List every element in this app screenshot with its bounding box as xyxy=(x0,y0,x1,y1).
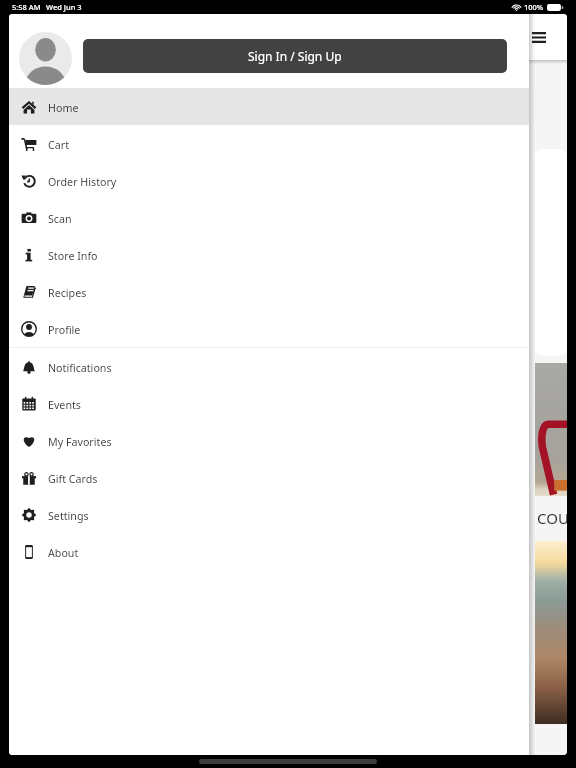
staticText: Notifications xyxy=(48,361,112,376)
button[interactable]: Settings xyxy=(9,496,529,533)
staticText: Events xyxy=(48,398,81,413)
staticText: Order History xyxy=(48,175,117,190)
staticText: Recipes xyxy=(48,286,87,301)
button[interactable]: Cart xyxy=(9,125,529,162)
button[interactable]: Events xyxy=(9,385,529,422)
staticText: Gift Cards xyxy=(48,472,98,487)
button[interactable]: Sign In / Sign Up xyxy=(83,39,507,73)
staticText: 100% xyxy=(524,2,544,12)
staticText: 5:58 AM xyxy=(12,2,41,12)
button[interactable]: Recipes xyxy=(9,273,529,310)
button[interactable]: Gift Cards xyxy=(9,459,529,496)
staticText: Cart xyxy=(48,138,70,153)
button[interactable]: Store Info xyxy=(9,236,529,273)
button[interactable]: About xyxy=(9,533,529,570)
button[interactable]: Scan xyxy=(9,199,529,236)
staticText: COUNTRY KITCHEN xyxy=(537,508,567,528)
staticText: Settings xyxy=(48,509,89,524)
staticText: Profile xyxy=(48,323,81,338)
button[interactable]: Home xyxy=(9,88,529,125)
button[interactable]: Profile xyxy=(9,310,529,347)
staticText: Wed Jun 3 xyxy=(46,2,82,12)
staticText: Sign In / Sign Up xyxy=(248,48,342,64)
staticText: About xyxy=(48,546,79,561)
button[interactable]: Open navigation menu xyxy=(522,20,556,54)
staticText: My Favorites xyxy=(48,435,112,450)
button[interactable]: Notifications xyxy=(9,348,529,385)
staticText: Scan xyxy=(48,212,72,227)
button[interactable]: My Favorites xyxy=(9,422,529,459)
staticText: Store Info xyxy=(48,249,98,264)
button[interactable]: Order History xyxy=(9,162,529,199)
staticText: Home xyxy=(48,101,79,116)
